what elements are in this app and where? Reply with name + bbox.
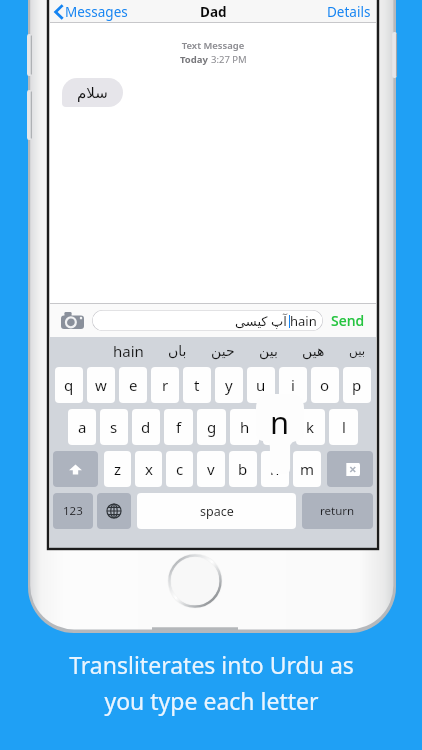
- button[interactable]: r: [151, 367, 179, 403]
- button[interactable]: j: [263, 409, 292, 445]
- button[interactable]: ھیں: [301, 343, 326, 359]
- button[interactable]: space: [137, 493, 296, 529]
- staticText: t: [194, 375, 200, 395]
- staticText: باں: [168, 343, 187, 359]
- staticText: u: [256, 375, 266, 395]
- button[interactable]: u: [247, 367, 275, 403]
- staticText: you type each letter: [104, 685, 319, 716]
- button[interactable]: g: [197, 409, 226, 445]
- staticText: f: [176, 417, 182, 437]
- button[interactable]: t: [183, 367, 211, 403]
- staticText: Transliterates into Urdu as: [69, 649, 354, 680]
- staticText: a: [78, 417, 87, 437]
- staticText: p: [352, 375, 362, 395]
- button[interactable]: Switch keyboard: [97, 493, 131, 529]
- staticText: Today: [180, 53, 211, 66]
- button[interactable]: k: [296, 409, 325, 445]
- staticText: j: [276, 417, 280, 437]
- staticText: Details: [327, 3, 371, 21]
- staticText: حین: [211, 343, 235, 359]
- button[interactable]: y: [215, 367, 243, 403]
- button[interactable]: a: [68, 409, 96, 445]
- staticText: l: [342, 417, 346, 437]
- button[interactable]: آپ کیسی: [92, 310, 323, 331]
- button[interactable]: l: [329, 409, 358, 445]
- staticText: Send: [331, 311, 365, 330]
- button[interactable]: m: [293, 451, 321, 487]
- button[interactable]: Delete: [327, 451, 373, 487]
- button[interactable]: c: [166, 451, 193, 487]
- staticText: hain: [113, 341, 144, 361]
- staticText: return: [320, 503, 355, 519]
- staticText: v: [207, 459, 215, 479]
- staticText: w: [95, 375, 107, 395]
- staticText: r: [162, 375, 169, 395]
- button[interactable]: f: [164, 409, 193, 445]
- button[interactable]: w: [87, 367, 115, 403]
- staticText: o: [320, 375, 330, 395]
- staticText: s: [110, 417, 118, 437]
- staticText: y: [225, 375, 233, 395]
- staticText: 123: [63, 503, 83, 519]
- button[interactable]: v: [197, 451, 225, 487]
- staticText: hain: [290, 312, 317, 330]
- staticText: q: [64, 375, 74, 395]
- button[interactable]: q: [55, 367, 83, 403]
- button[interactable]: i: [279, 367, 307, 403]
- staticText: d: [141, 417, 151, 437]
- button[interactable]: Take photo: [59, 307, 85, 333]
- staticText: ھیں: [302, 343, 325, 359]
- button[interactable]: h: [230, 409, 259, 445]
- staticText: k: [306, 417, 315, 437]
- staticText: space: [200, 503, 234, 520]
- staticText: Messages: [65, 3, 128, 21]
- staticText: x: [145, 459, 153, 479]
- button[interactable]: باں: [167, 343, 188, 359]
- staticText: سلام: [77, 84, 108, 101]
- button[interactable]: s: [100, 409, 128, 445]
- button[interactable]: سلام: [62, 78, 123, 107]
- button[interactable]: بین: [258, 343, 279, 359]
- button[interactable]: 123: [53, 493, 93, 529]
- staticText: آپ کیسی: [235, 312, 287, 330]
- button[interactable]: b: [229, 451, 257, 487]
- staticText: g: [207, 417, 217, 437]
- button[interactable]: hain: [112, 341, 145, 361]
- staticText: بیں: [349, 344, 366, 358]
- button[interactable]: Send: [329, 311, 367, 330]
- button[interactable]: Shift: [53, 451, 98, 487]
- button[interactable]: n: [261, 451, 289, 487]
- staticText: h: [240, 417, 250, 437]
- staticText: n: [270, 459, 280, 479]
- staticText: بین: [259, 343, 278, 359]
- button[interactable]: x: [135, 451, 162, 487]
- button[interactable]: Details: [322, 0, 376, 23]
- button[interactable]: p: [343, 367, 371, 403]
- button[interactable]: z: [104, 451, 131, 487]
- button[interactable]: Messages: [50, 0, 134, 23]
- button[interactable]: e: [119, 367, 147, 403]
- staticText: z: [114, 459, 122, 479]
- staticText: Dad: [200, 3, 227, 21]
- button[interactable]: بیں: [348, 344, 367, 358]
- staticText: m: [300, 459, 315, 479]
- button[interactable]: return: [302, 493, 373, 529]
- staticText: i: [291, 375, 295, 395]
- staticText: Text Message: [50, 39, 376, 52]
- staticText: b: [238, 459, 248, 479]
- button[interactable]: حین: [210, 343, 236, 359]
- staticText: n: [270, 401, 290, 443]
- button[interactable]: o: [311, 367, 339, 403]
- staticText: c: [176, 459, 184, 479]
- button[interactable]: d: [132, 409, 160, 445]
- staticText: 3:27 PM: [211, 53, 247, 66]
- staticText: e: [129, 375, 138, 395]
